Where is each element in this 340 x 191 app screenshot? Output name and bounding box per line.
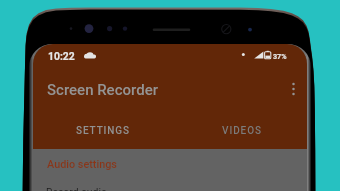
button[interactable] [170,111,307,148]
staticText: SETTINGS [76,125,130,137]
staticText: Record audio [46,186,107,191]
button[interactable] [33,177,307,191]
button[interactable]: More options [284,77,308,102]
staticText: Audio settings [47,158,117,171]
staticText: 10:22 [48,50,75,62]
staticText: VIDEOS [222,125,262,137]
staticText: 37% [273,52,287,60]
staticText: Screen Recorder [47,81,158,99]
button[interactable] [33,111,170,148]
